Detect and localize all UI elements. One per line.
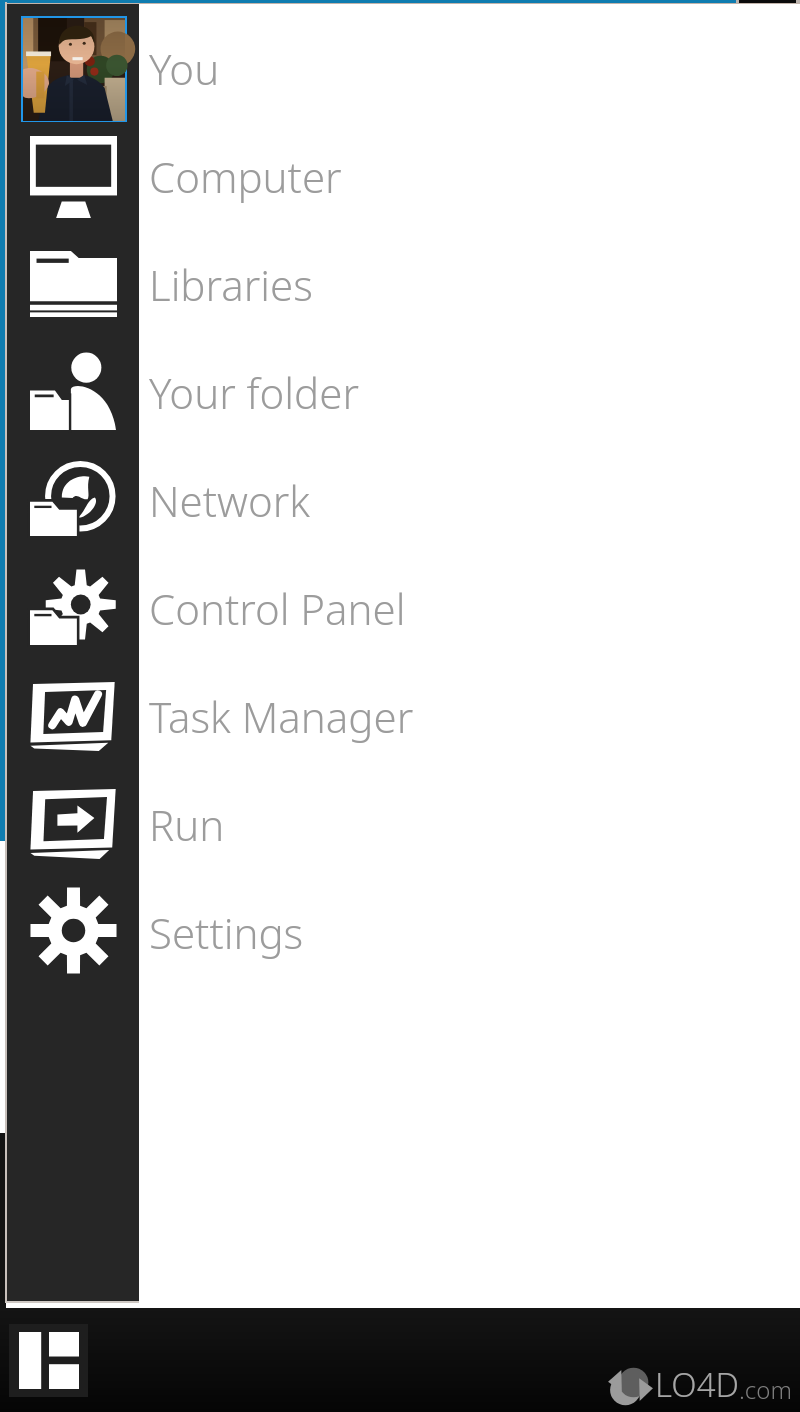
staticText: Task Manager [149,688,414,745]
button[interactable]: Your folder [7,343,796,449]
staticText: You [149,40,220,97]
staticText: Settings [149,904,304,961]
button[interactable]: Computer [7,127,796,233]
button[interactable]: Start [9,1324,88,1397]
staticText: Computer [149,148,342,205]
button[interactable]: Run [7,775,796,881]
staticText: Network [149,472,311,529]
button[interactable]: Network [7,451,796,557]
button[interactable]: Settings [7,883,796,989]
staticText: LO4D [655,1362,739,1407]
button[interactable]: Task Manager [7,667,796,773]
button[interactable]: You [7,19,796,125]
staticText: Libraries [149,256,313,313]
button[interactable]: Control Panel [7,559,796,665]
staticText: Run [149,796,225,853]
button[interactable]: Libraries [7,235,796,341]
staticText: Control Panel [149,580,406,637]
staticText: Your folder [149,364,360,421]
staticText: .com [739,1373,792,1406]
